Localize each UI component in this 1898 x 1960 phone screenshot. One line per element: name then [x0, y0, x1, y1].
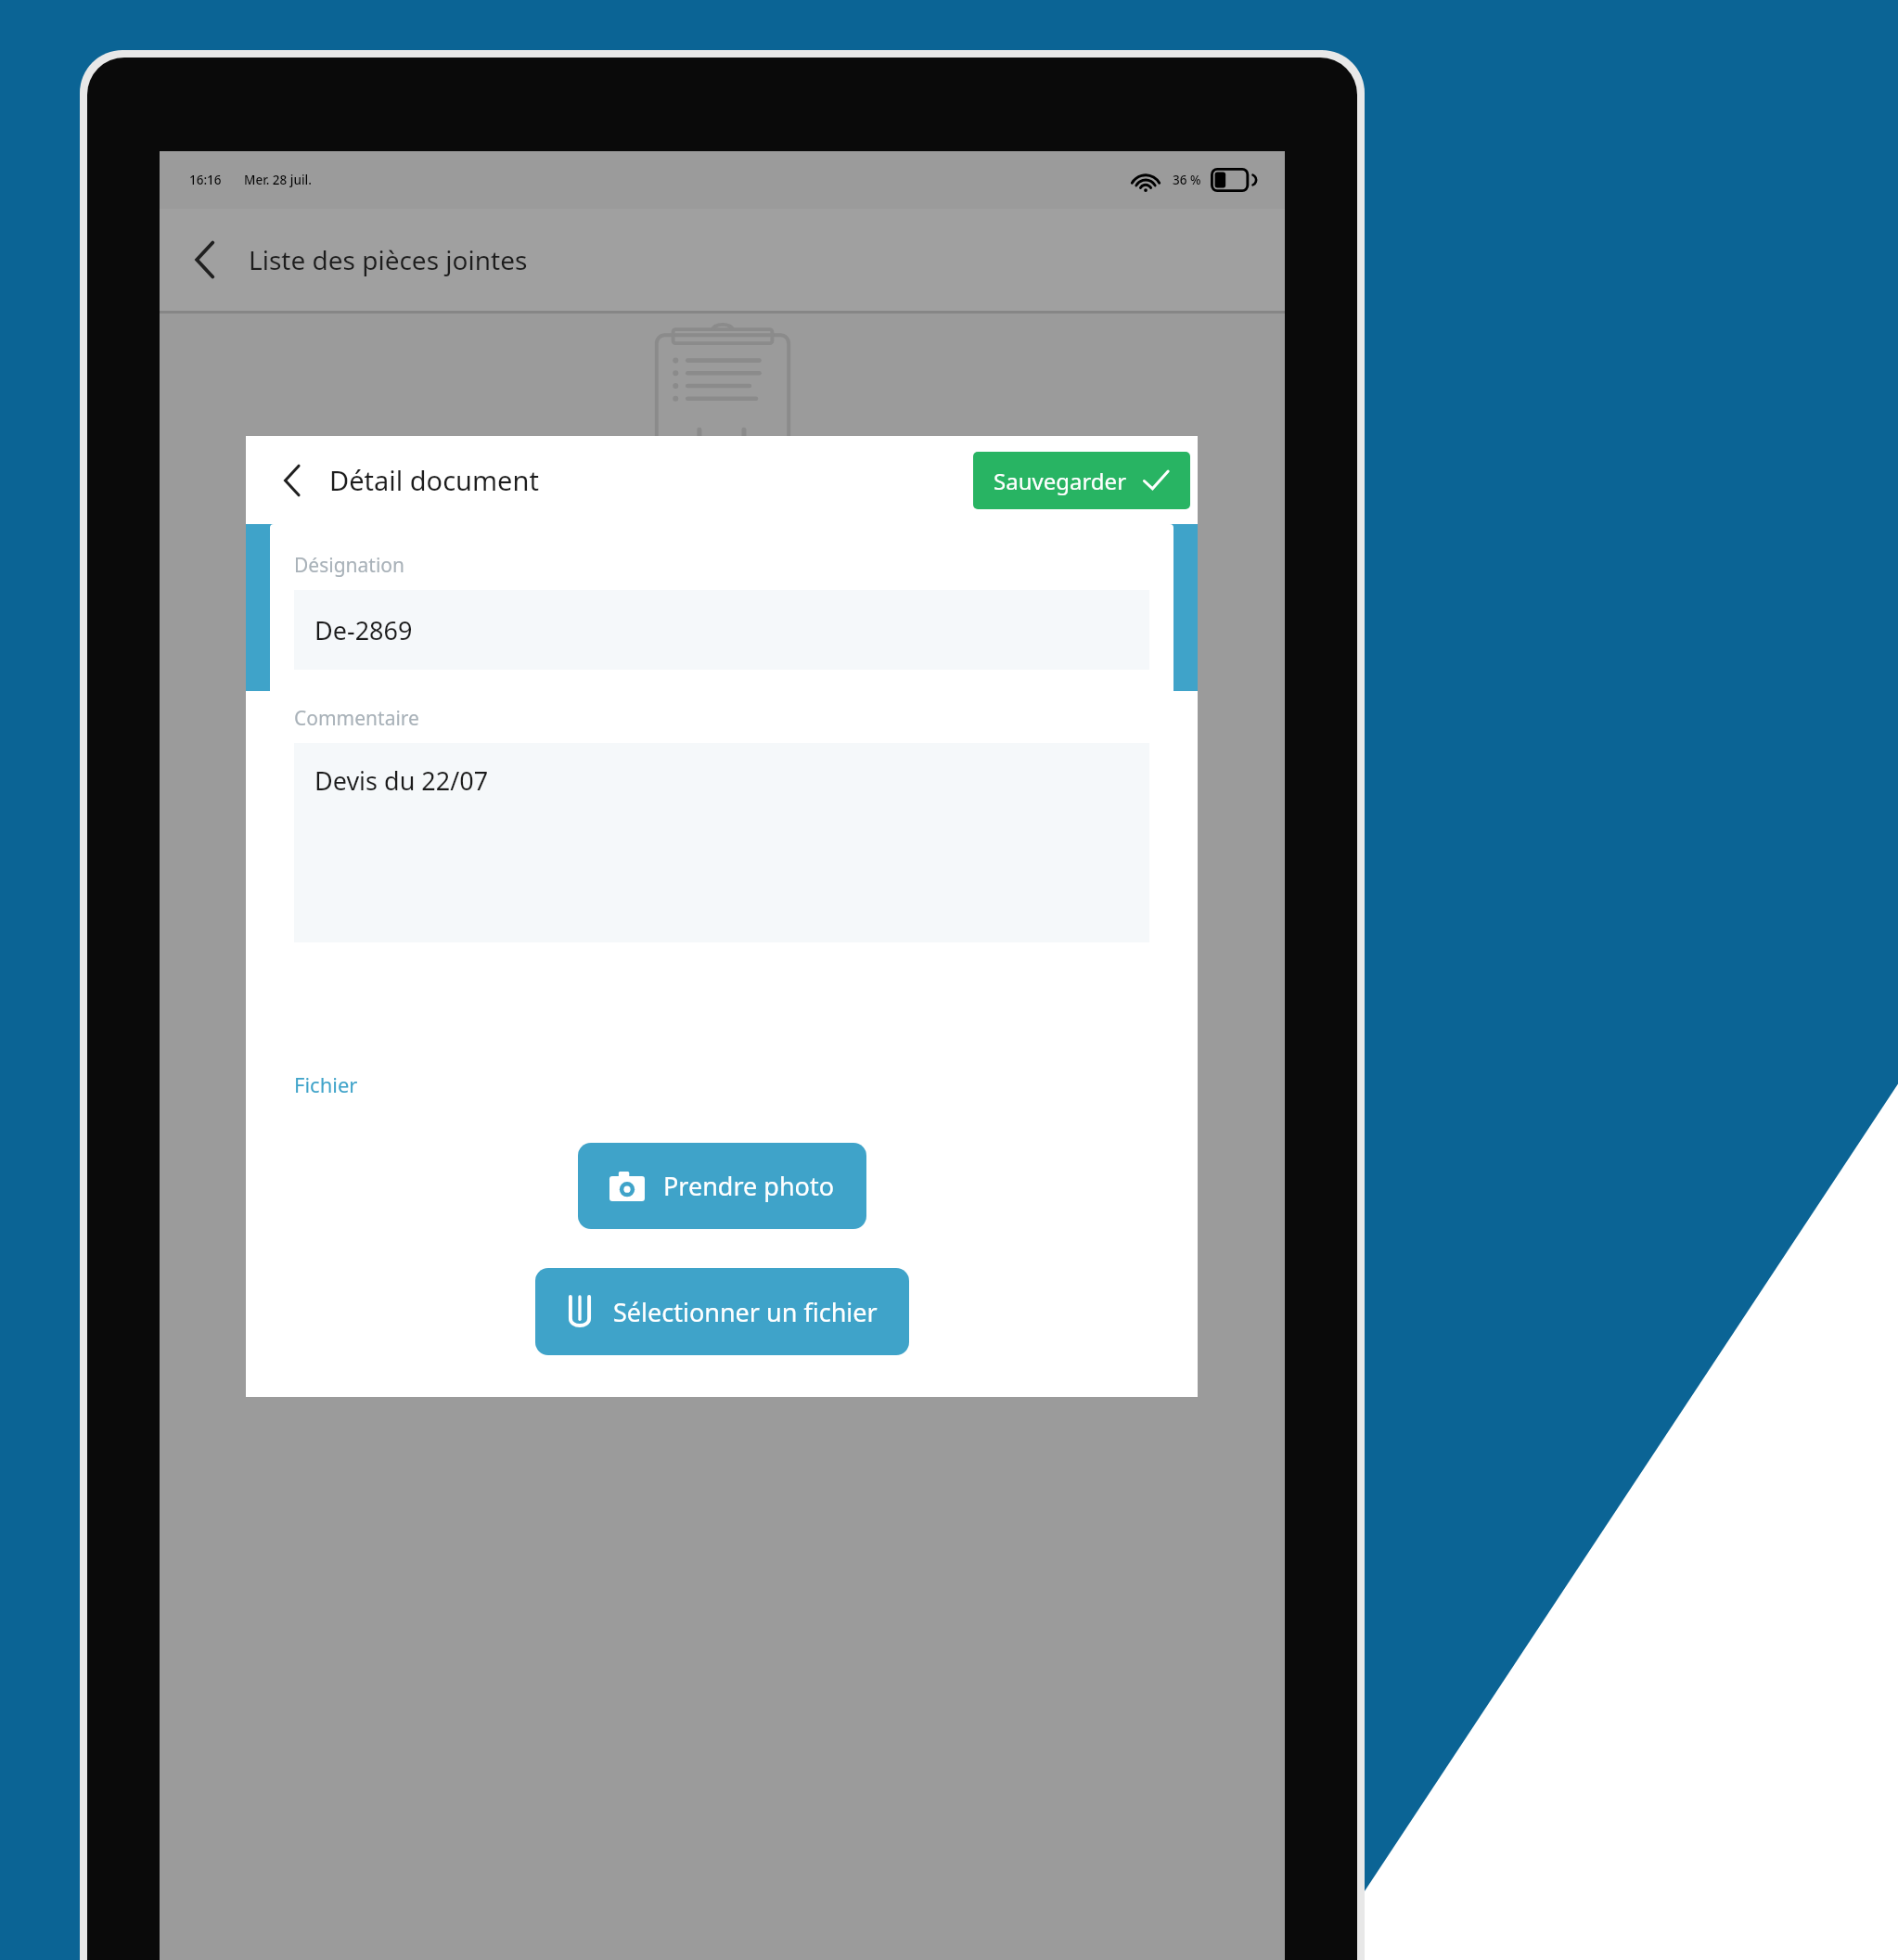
staticText: Détail document — [329, 462, 539, 498]
staticText: 36 % — [1173, 172, 1201, 188]
button[interactable]: De-2869 — [294, 590, 1149, 670]
staticText: De-2869 — [314, 613, 413, 647]
staticText: 16:16 — [189, 172, 222, 188]
button[interactable]: Prendre photo — [578, 1143, 866, 1229]
button[interactable]: Sélectionner un fichier — [535, 1268, 909, 1355]
staticText: Commentaire — [294, 705, 419, 732]
button[interactable]: Devis du 22/07 — [294, 743, 1149, 942]
staticText: Fichier — [294, 1070, 358, 1098]
button[interactable]: Back — [268, 456, 316, 505]
staticText: Mer. 28 juil. — [244, 172, 312, 188]
staticText: Sélectionner un fichier — [613, 1295, 878, 1329]
button[interactable]: Sauvegarder — [973, 452, 1190, 509]
button[interactable]: Back — [176, 231, 234, 288]
staticText: Devis du 22/07 — [314, 763, 489, 798]
staticText: Prendre photo — [663, 1169, 835, 1203]
staticText: Désignation — [294, 552, 405, 579]
staticText: Liste des pièces jointes — [249, 242, 528, 277]
staticText: Sauvegarder — [994, 466, 1127, 496]
